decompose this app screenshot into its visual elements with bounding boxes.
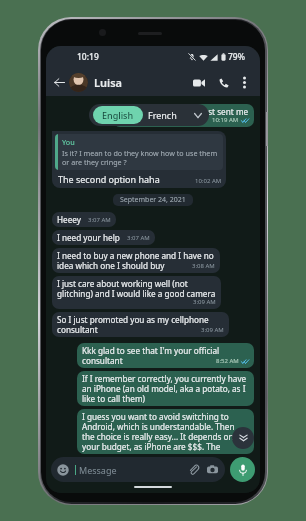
staticText: 8:52 AM bbox=[216, 357, 239, 365]
staticText: 10:02 AM bbox=[195, 177, 222, 185]
staticText: September 24, 2021 bbox=[120, 195, 186, 205]
button[interactable]: Message bbox=[51, 457, 225, 482]
button[interactable]: Record voice message bbox=[230, 457, 255, 482]
staticText: I just care about working well (not glit… bbox=[57, 278, 216, 299]
button[interactable]: I guess you want to avoid switching to A… bbox=[77, 409, 254, 454]
button[interactable]: If I remember correctly, you currently h… bbox=[77, 371, 254, 406]
staticText: Message bbox=[79, 464, 117, 476]
button[interactable]: Scroll to bottom bbox=[232, 427, 254, 449]
staticText: I need to buy a new phone and I have no … bbox=[57, 250, 215, 271]
button[interactable]: Video call bbox=[189, 73, 208, 92]
staticText: The second option haha bbox=[58, 173, 160, 185]
button[interactable]: So I just promoted you as my cellphone c… bbox=[52, 312, 229, 337]
staticText: So I just promoted you as my cellphone c… bbox=[57, 314, 224, 335]
staticText: Heeey bbox=[57, 214, 81, 225]
button[interactable]: Luisa bbox=[69, 69, 189, 95]
button[interactable]: Back bbox=[51, 74, 68, 91]
staticText: You bbox=[62, 137, 75, 147]
staticText: I need your help bbox=[57, 232, 120, 243]
button[interactable]: Change language bbox=[189, 106, 207, 124]
staticText: French bbox=[148, 109, 177, 121]
staticText: 79% bbox=[228, 51, 245, 63]
button[interactable]: Heeey bbox=[52, 212, 116, 227]
button[interactable]: I need to buy a new phone and I have no … bbox=[52, 248, 220, 273]
staticText: 3:08 AM bbox=[192, 262, 215, 270]
button[interactable]: English bbox=[93, 106, 143, 124]
staticText: 3:07 AM bbox=[127, 234, 150, 242]
button[interactable]: Look at the pictures I just sent me bbox=[113, 104, 254, 127]
staticText: Kkk glad to see that I'm your official c… bbox=[82, 345, 249, 366]
staticText: Look at the pictures I just sent me bbox=[118, 106, 249, 117]
staticText: If I remember correctly, you currently h… bbox=[82, 373, 249, 404]
button[interactable]: I need your help bbox=[52, 230, 155, 245]
button[interactable]: You bbox=[52, 131, 226, 188]
staticText: I guess you want to avoid switching to A… bbox=[82, 411, 249, 452]
staticText: 10:19 bbox=[77, 51, 99, 63]
button[interactable]: Voice call bbox=[214, 73, 233, 92]
button[interactable]: French bbox=[148, 106, 177, 124]
staticText: 3:09 AM bbox=[193, 298, 216, 306]
button[interactable]: I just care about working well (not glit… bbox=[52, 276, 221, 309]
staticText: 3:07 AM bbox=[88, 216, 111, 224]
button[interactable]: More options bbox=[236, 74, 253, 91]
staticText: English bbox=[102, 109, 134, 121]
staticText: 3:09 AM bbox=[201, 326, 224, 334]
button[interactable]: Kkk glad to see that I'm your official c… bbox=[77, 343, 254, 368]
staticText: Is it? I mean to do they know how to use… bbox=[62, 148, 220, 167]
staticText: Luisa bbox=[94, 75, 122, 90]
staticText: 10:19 AM bbox=[212, 116, 239, 124]
